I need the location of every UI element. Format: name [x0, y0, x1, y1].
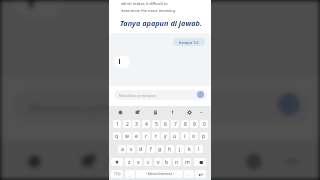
- button[interactable]: 2: [123, 120, 131, 128]
- button[interactable]: f: [147, 145, 155, 153]
- button[interactable]: 4: [142, 120, 150, 128]
- staticText: x: [137, 159, 140, 166]
- staticText: b: [165, 159, 169, 166]
- staticText: 3: [135, 121, 138, 128]
- button[interactable]: 7: [171, 120, 179, 128]
- button[interactable]: d: [137, 145, 145, 153]
- button[interactable]: Send: [278, 93, 300, 115]
- button[interactable]: Send: [197, 91, 204, 98]
- staticText: p: [202, 133, 206, 140]
- staticText: • Bahasa Indonesia •: [146, 172, 174, 176]
- staticText: v: [157, 159, 160, 166]
- staticText: 4: [145, 121, 148, 128]
- button[interactable]: i: [181, 132, 189, 140]
- button[interactable]: Enter: [195, 170, 206, 178]
- staticText: ,: [129, 172, 131, 177]
- button[interactable]: Clipboard: [151, 108, 159, 116]
- staticText: ?1☺: [114, 172, 121, 176]
- staticText: 1: [116, 121, 119, 128]
- staticText: Masukkan pertanyaan: [30, 99, 150, 115]
- button[interactable]: u: [171, 132, 179, 140]
- button[interactable]: 8: [181, 120, 189, 128]
- button[interactable]: k: [185, 145, 193, 153]
- button[interactable]: v: [154, 158, 162, 166]
- staticText: m: [185, 159, 190, 166]
- staticText: n: [175, 159, 179, 166]
- button[interactable]: 9: [190, 120, 198, 128]
- button[interactable]: g: [156, 145, 164, 153]
- button[interactable]: Settings: [239, 147, 265, 173]
- button[interactable]: l: [195, 145, 203, 153]
- button[interactable]: Emoji: [116, 108, 124, 116]
- button[interactable]: Shift: [111, 158, 123, 166]
- button[interactable]: GIF: [74, 147, 99, 173]
- button[interactable]: Masukkan pertanyaan: [14, 90, 309, 122]
- button[interactable]: 1: [113, 120, 121, 128]
- button[interactable]: More options: [197, 108, 205, 116]
- button[interactable]: ?1☺: [111, 170, 123, 178]
- button[interactable]: e: [132, 132, 140, 140]
- button[interactable]: w: [123, 132, 131, 140]
- button[interactable]: q: [113, 132, 121, 140]
- staticText: which makes it difficult to: [121, 1, 168, 6]
- staticText: z: [128, 159, 131, 166]
- staticText: c: [147, 159, 150, 166]
- button[interactable]: n: [173, 158, 181, 166]
- staticText: l: [198, 146, 200, 153]
- button[interactable]: berapa 1-5: [173, 38, 205, 46]
- button[interactable]: c: [144, 158, 152, 166]
- button[interactable]: Voice input: [185, 147, 211, 173]
- staticText: u: [173, 133, 177, 140]
- staticText: o: [192, 133, 196, 140]
- staticText: Masukkan pertanyaan: [119, 93, 157, 98]
- staticText: 9: [193, 121, 196, 128]
- staticText: determine the exact meaning.: [121, 8, 176, 13]
- button[interactable]: Settings: [185, 108, 193, 116]
- button[interactable]: • Bahasa Indonesia •: [136, 170, 183, 178]
- staticText: d: [139, 146, 143, 153]
- button[interactable]: p: [200, 132, 208, 140]
- button[interactable]: o: [190, 132, 198, 140]
- button[interactable]: r: [142, 132, 150, 140]
- button[interactable]: a: [118, 145, 126, 153]
- button[interactable]: b: [163, 158, 171, 166]
- button[interactable]: x: [134, 158, 142, 166]
- staticText: h: [168, 146, 172, 153]
- button[interactable]: j: [176, 145, 184, 153]
- staticText: y: [164, 133, 167, 140]
- button[interactable]: y: [161, 132, 169, 140]
- button[interactable]: Masukkan pertanyaan: [114, 90, 207, 100]
- staticText: q: [115, 133, 119, 140]
- staticText: j: [179, 146, 181, 153]
- button[interactable]: z: [125, 158, 133, 166]
- button[interactable]: 3: [132, 120, 140, 128]
- button[interactable]: GIF: [133, 108, 141, 116]
- button[interactable]: 6: [161, 120, 169, 128]
- staticText: i: [184, 133, 186, 140]
- staticText: t: [155, 133, 157, 140]
- button[interactable]: t: [152, 132, 160, 140]
- staticText: r: [145, 133, 148, 140]
- button[interactable]: .: [184, 170, 194, 178]
- button[interactable]: h: [166, 145, 174, 153]
- staticText: e: [135, 133, 138, 140]
- other: Backspace: [198, 160, 203, 165]
- button[interactable]: Emoji: [20, 147, 45, 173]
- button[interactable]: ,: [125, 170, 135, 178]
- button[interactable]: Clipboard: [131, 147, 157, 173]
- staticText: f: [150, 146, 152, 153]
- button[interactable]: Backspace: [194, 158, 206, 166]
- button[interactable]: s: [127, 145, 135, 153]
- button[interactable]: 0: [200, 120, 208, 128]
- other: Enter: [198, 172, 203, 177]
- other: Shift: [115, 160, 119, 164]
- button[interactable]: m: [183, 158, 191, 166]
- staticText: 6: [164, 121, 167, 128]
- staticText: Tanya apapun di jawab.: [120, 18, 203, 28]
- staticText: k: [188, 146, 191, 153]
- button[interactable]: Voice input: [168, 108, 176, 116]
- staticText: 2: [126, 121, 129, 128]
- button[interactable]: 5: [152, 120, 160, 128]
- staticText: s: [130, 146, 133, 153]
